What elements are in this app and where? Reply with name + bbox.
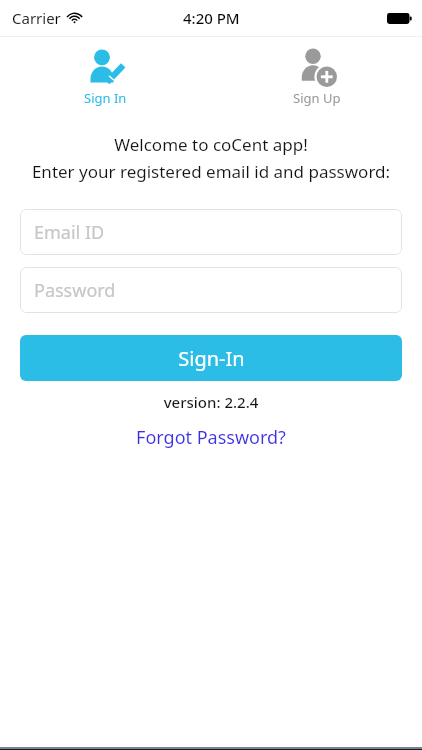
button[interactable]: Forgot Password? bbox=[0, 425, 422, 450]
staticText: Password bbox=[34, 278, 116, 303]
staticText: Email ID bbox=[34, 220, 105, 245]
button[interactable]: Sign In bbox=[0, 43, 211, 111]
button[interactable]: Sign-In bbox=[20, 335, 402, 381]
staticText: Sign Up bbox=[293, 89, 341, 107]
other: Sign In bbox=[86, 47, 126, 87]
button[interactable]: Sign Up bbox=[211, 43, 422, 111]
staticText: version: 2.2.4 bbox=[0, 392, 422, 412]
staticText: Carrier bbox=[12, 8, 61, 28]
staticText: 4:20 PM bbox=[183, 8, 240, 28]
staticText: Sign-In bbox=[178, 345, 245, 372]
staticText: Sign In bbox=[84, 89, 127, 107]
other: Sign Up bbox=[297, 47, 337, 87]
button[interactable]: Password bbox=[20, 267, 402, 313]
staticText: Forgot Password? bbox=[136, 425, 286, 450]
staticText: Enter your registered email id and passw… bbox=[0, 160, 422, 183]
button[interactable]: Email ID bbox=[20, 209, 402, 255]
staticText: Welcome to coCent app! bbox=[0, 133, 422, 156]
